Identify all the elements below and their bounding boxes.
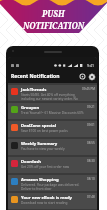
- button[interactable]: JackThreads: [8, 85, 97, 101]
- staticText: Amazon Shopping: [21, 177, 59, 183]
- staticText: Delivered. Your package was delivered.: [21, 183, 80, 187]
- staticText: You have to view your weekly: [21, 147, 65, 151]
- staticText: 07:48: [87, 195, 95, 199]
- staticText: Starts 50/80. Get 40% off everything,: [21, 93, 76, 97]
- staticText: 09:01: [87, 123, 95, 127]
- staticText: Save $100 on best power packs: [21, 129, 68, 133]
- staticText: Doordash: [21, 159, 42, 165]
- staticText: 08:30: [87, 159, 95, 163]
- staticText: Weekly Summary: [21, 141, 58, 147]
- button[interactable]: Your new eBook is ready: [8, 193, 97, 209]
- button[interactable]: Settings: [88, 73, 95, 80]
- staticText: PUSH: [42, 8, 65, 19]
- staticText: DealZone special: [21, 123, 57, 129]
- staticText: 09:45 PM: [82, 87, 95, 91]
- staticText: 08:55: [87, 141, 95, 145]
- button[interactable]: Groupon: [8, 103, 97, 119]
- staticText: including our newest variety order. No e…: [21, 97, 80, 101]
- staticText: Get 20% off your first order now: [21, 165, 70, 169]
- staticText: 08:10: [87, 177, 95, 181]
- staticText: NOTIFICATION: [23, 20, 85, 31]
- staticText: Treat Yourself • 61 Massive Discounts 60…: [21, 111, 84, 115]
- staticText: Groupon: [21, 105, 40, 111]
- button[interactable]: Amazon Shopping: [8, 175, 97, 191]
- staticText: 09:21: [87, 105, 95, 109]
- button[interactable]: DealZone special: [8, 121, 97, 137]
- button[interactable]: Weekly Summary: [8, 139, 97, 155]
- staticText: Your new eBook is ready: [21, 195, 73, 201]
- staticText: Download now to start reading: [21, 201, 68, 205]
- button[interactable]: Clear all: [79, 73, 86, 80]
- button[interactable]: Doordash: [8, 157, 97, 173]
- staticText: 9:41: [87, 63, 94, 68]
- staticText: JackThreads: [21, 87, 47, 93]
- staticText: Deliver to front door: [21, 187, 52, 191]
- staticText: Recent Notification: [11, 73, 60, 80]
